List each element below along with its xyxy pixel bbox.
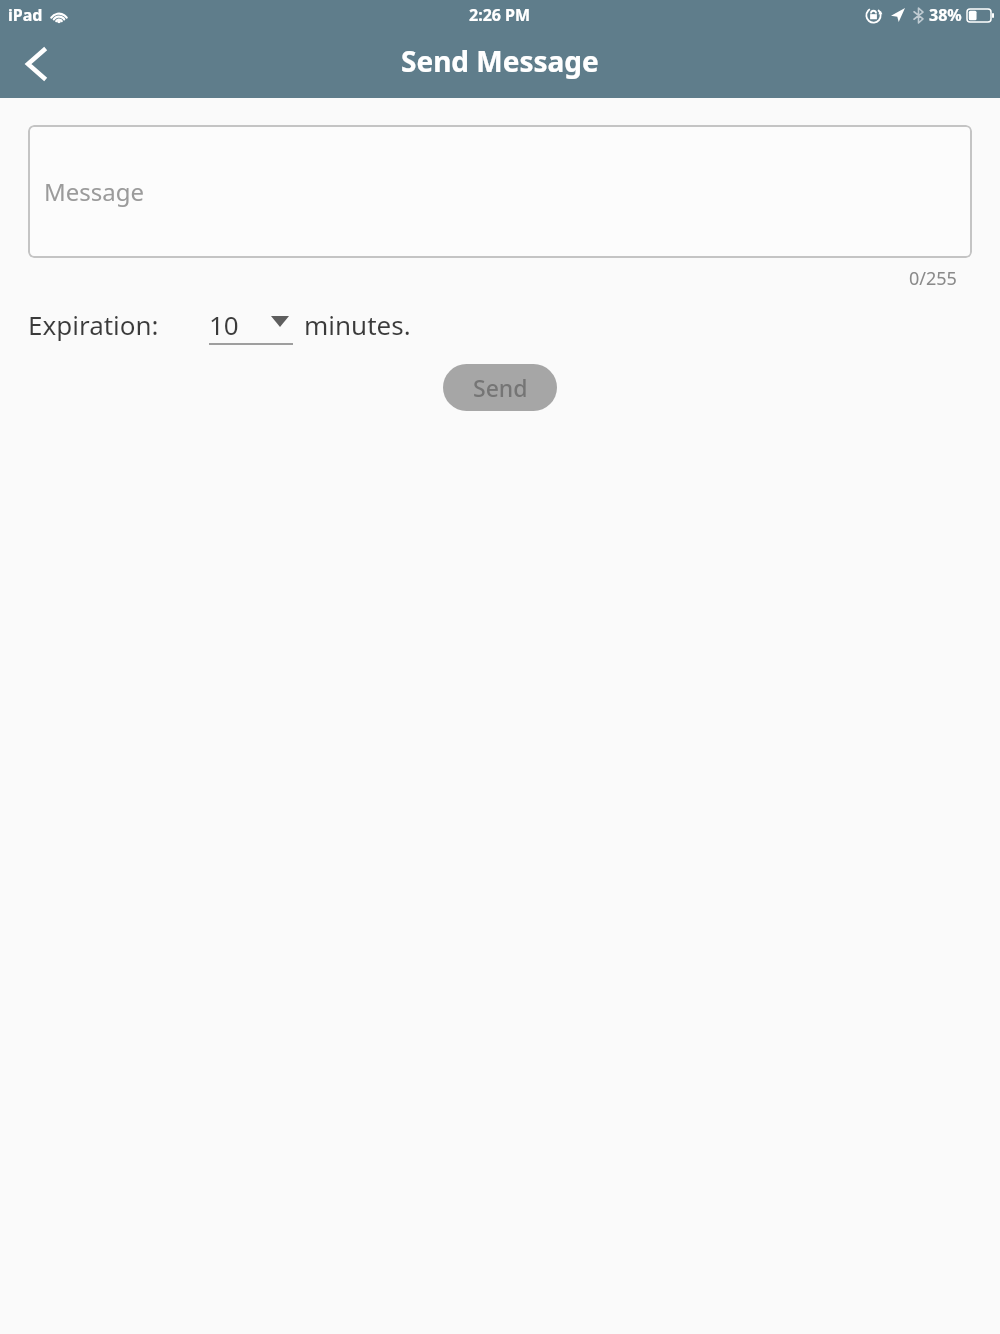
button[interactable]: Message [28, 125, 972, 258]
staticText: iPad [8, 4, 43, 26]
staticText: 0/255 [909, 266, 957, 291]
staticText: 10 [209, 307, 239, 342]
staticText: minutes. [304, 307, 411, 342]
button[interactable]: 10 [209, 304, 304, 345]
staticText: Send Message [401, 42, 599, 80]
staticText: Message [44, 175, 145, 208]
staticText: 2:26 PM [469, 4, 531, 26]
staticText: 38% [929, 4, 962, 26]
staticText: Send [473, 372, 528, 403]
button[interactable] [18, 46, 54, 82]
button[interactable]: Send [443, 364, 557, 411]
staticText: Expiration: [28, 307, 159, 342]
